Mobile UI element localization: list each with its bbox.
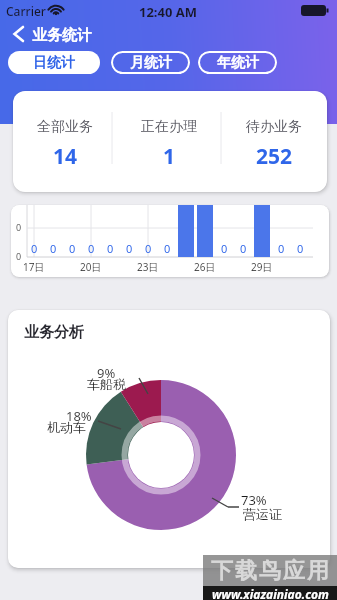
staticText: 17日: [23, 260, 45, 273]
staticText: 29日: [251, 260, 273, 273]
staticText: 12:40 AM: [139, 3, 198, 17]
staticText: 0: [240, 241, 247, 253]
staticText: Carrier: [6, 3, 46, 17]
staticText: 业务统计: [32, 26, 92, 43]
staticText: 0: [16, 250, 22, 262]
staticText: 0: [278, 241, 285, 253]
staticText: 9%: [97, 364, 116, 379]
button[interactable]: 日统计: [8, 51, 100, 74]
staticText: 20日: [80, 260, 102, 273]
staticText: 252: [256, 142, 293, 164]
staticText: 0: [164, 241, 171, 253]
staticText: 14: [53, 142, 78, 164]
button[interactable]: 业务统计: [6, 22, 136, 46]
staticText: 23日: [137, 260, 159, 273]
staticText: 机动车: [47, 419, 86, 434]
staticText: 0: [88, 241, 95, 253]
staticText: 待办业务: [246, 118, 302, 134]
staticText: 年统计: [217, 54, 259, 72]
staticText: 业务分析: [24, 323, 84, 339]
staticText: 0: [145, 241, 152, 253]
staticText: 下载鸟应用: [210, 557, 330, 585]
button[interactable]: 年统计: [198, 51, 277, 74]
staticText: 26日: [194, 260, 216, 273]
staticText: 0: [107, 241, 114, 253]
staticText: 0: [221, 241, 228, 253]
staticText: 0: [31, 241, 38, 253]
staticText: 正在办理: [141, 118, 197, 134]
staticText: 车船税: [87, 376, 126, 391]
staticText: 营运证: [243, 506, 282, 521]
staticText: 18%: [66, 407, 92, 422]
staticText: 月统计: [130, 54, 172, 72]
staticText: www.xiazainiao.com: [212, 586, 329, 600]
staticText: 日统计: [33, 54, 75, 72]
staticText: 0: [297, 241, 304, 253]
staticText: 0: [16, 221, 22, 233]
button[interactable]: 月统计: [111, 51, 190, 74]
staticText: 0: [50, 241, 57, 253]
staticText: 0: [69, 241, 76, 253]
staticText: 1: [163, 142, 176, 164]
staticText: 73%: [241, 491, 267, 506]
staticText: 0: [126, 241, 133, 253]
staticText: 全部业务: [37, 118, 93, 134]
